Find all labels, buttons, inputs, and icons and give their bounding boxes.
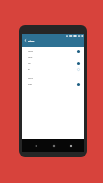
button[interactable]: Home — [49, 141, 58, 150]
staticText: Notification — [28, 51, 34, 52]
button[interactable]: Change PIN — [22, 75, 84, 81]
button[interactable]: Language — [22, 54, 84, 60]
staticText: Sound — [28, 63, 31, 64]
staticText: Password — [28, 84, 33, 85]
staticText: Change PIN — [28, 78, 33, 79]
staticText: Language — [28, 57, 33, 58]
staticText: Settings — [28, 40, 35, 42]
button[interactable]: Sound — [22, 60, 84, 66]
button[interactable]: Navigate up — [22, 36, 28, 45]
button[interactable]: Password — [22, 81, 84, 87]
button[interactable]: Wifi — [22, 66, 84, 72]
button[interactable]: Recent apps — [66, 141, 75, 150]
button[interactable]: Back — [31, 141, 40, 150]
button[interactable]: Notification — [22, 48, 84, 54]
staticText: Wifi — [28, 69, 30, 70]
